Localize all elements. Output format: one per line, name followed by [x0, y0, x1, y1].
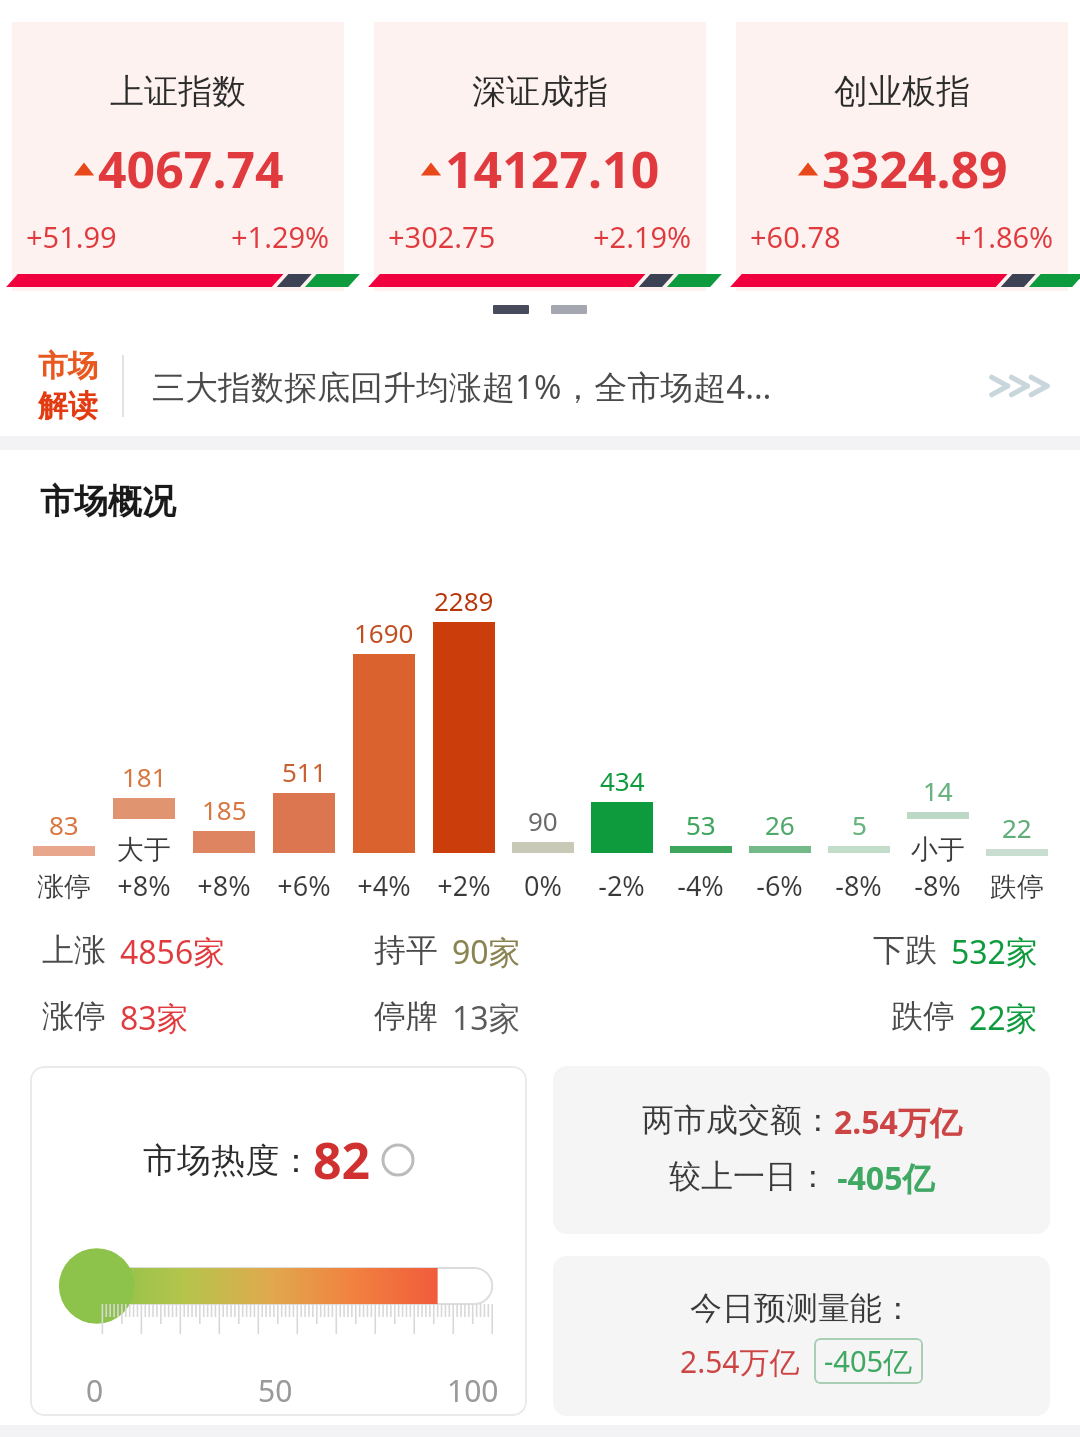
staticText: 2.54万亿 [834, 1100, 962, 1144]
other: 更多 [978, 366, 1054, 406]
staticText: +2.19% [593, 217, 692, 256]
staticText: 0% [524, 867, 562, 904]
staticText: 较上一日： [669, 1156, 829, 1196]
staticText: +302.75 [388, 217, 496, 256]
button[interactable]: 市场 [0, 336, 1080, 436]
staticText: 0 [86, 1370, 104, 1411]
staticText: 532家 [951, 930, 1038, 974]
staticText: 大于 [117, 833, 171, 867]
staticText: -8% [914, 867, 961, 904]
staticText: 涨停 [37, 870, 91, 904]
staticText: 53 [686, 807, 716, 842]
staticText: 1690 [354, 615, 414, 650]
staticText: 13家 [452, 996, 521, 1040]
staticText: 83家 [120, 996, 189, 1040]
staticText: 市场热度： [143, 1139, 313, 1182]
staticText: 434 [600, 763, 645, 798]
staticText: -405亿 [829, 1156, 935, 1200]
staticText: +1.29% [231, 217, 330, 256]
button[interactable]: 市场热度： [30, 1066, 527, 1416]
staticText: 14127.10 [445, 135, 660, 203]
button[interactable]: 深证成指 [374, 22, 706, 291]
staticText: 26 [765, 807, 795, 842]
staticText: 创业板指 [736, 70, 1068, 113]
staticText: 14 [923, 773, 953, 808]
staticText: 2289 [434, 583, 494, 618]
button[interactable]: 今日预测量能： [553, 1256, 1050, 1416]
staticText: 185 [202, 792, 247, 827]
staticText: 50 [258, 1370, 293, 1411]
staticText: 2.54万亿 [680, 1341, 800, 1382]
staticText: 4067.74 [98, 135, 284, 203]
staticText: 市场 [38, 347, 98, 385]
staticText: 跌停 [990, 870, 1044, 904]
staticText: 上证指数 [12, 70, 344, 113]
button[interactable]: 两市成交额： [553, 1066, 1050, 1234]
staticText: +51.99 [26, 217, 117, 256]
staticText: 181 [122, 759, 167, 794]
staticText: -405亿 [824, 1341, 913, 1381]
staticText: 90家 [452, 930, 521, 974]
staticText: 3324.89 [822, 135, 1008, 203]
staticText: +8% [197, 867, 251, 904]
staticText: 22家 [969, 996, 1038, 1040]
staticText: 两市成交额： [642, 1100, 834, 1140]
staticText: 跌停 [891, 996, 955, 1036]
staticText: +6% [277, 867, 331, 904]
staticText: 小于 [911, 833, 965, 867]
staticText: 83 [49, 807, 79, 842]
staticText: 511 [282, 754, 327, 789]
staticText: 三大指数探底回升均涨超1%，全市场超4… [152, 364, 978, 409]
staticText: -4% [677, 867, 724, 904]
button[interactable]: 创业板指 [736, 22, 1068, 291]
staticText: 90 [528, 803, 558, 838]
staticText: 100 [447, 1370, 499, 1411]
staticText: +2% [437, 867, 491, 904]
staticText: 4856家 [120, 930, 226, 974]
staticText: 解读 [38, 387, 98, 425]
staticText: -2% [598, 867, 645, 904]
staticText: +8% [117, 867, 171, 904]
staticText: 持平 [374, 930, 438, 970]
staticText: 涨停 [42, 996, 106, 1036]
button[interactable]: 上证指数 [12, 22, 344, 291]
staticText: 5 [852, 807, 867, 842]
staticText: -8% [835, 867, 882, 904]
staticText: 22 [1002, 810, 1032, 845]
staticText: 上涨 [42, 930, 106, 970]
staticText: 停牌 [374, 996, 438, 1036]
staticText: +4% [357, 867, 411, 904]
other: 说明 [381, 1143, 415, 1177]
staticText: 今日预测量能： [690, 1288, 914, 1328]
staticText: +1.86% [955, 217, 1054, 256]
staticText: -6% [756, 867, 803, 904]
staticText: 下跌 [873, 930, 937, 970]
staticText: 82 [313, 1126, 371, 1194]
staticText: +60.78 [750, 217, 841, 256]
staticText: 市场概况 [40, 480, 176, 523]
staticText: 深证成指 [374, 70, 706, 113]
